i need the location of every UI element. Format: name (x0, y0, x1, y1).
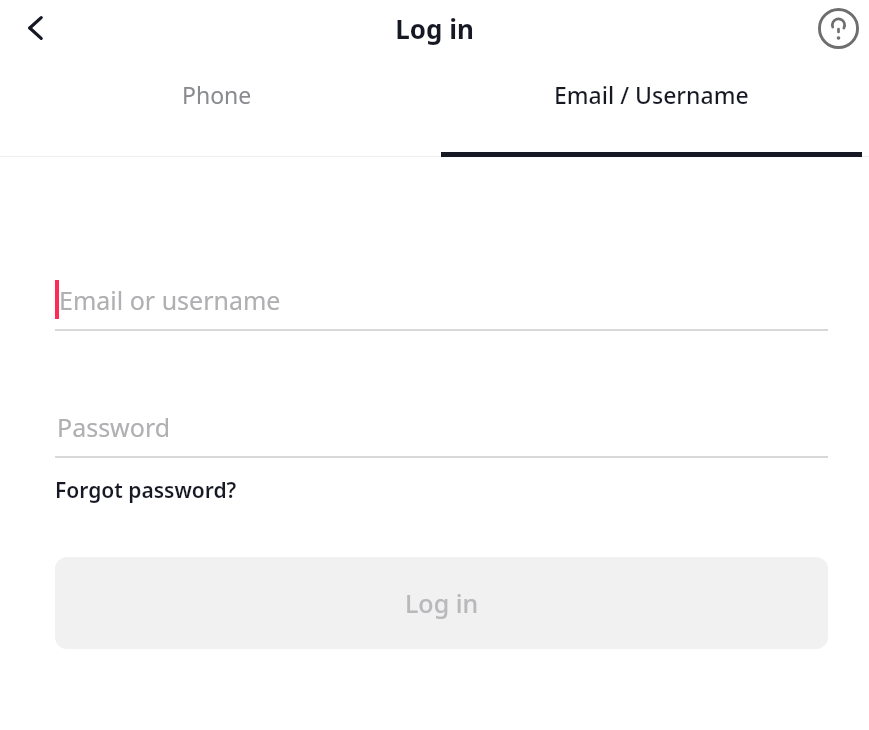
staticText: Log in (405, 586, 479, 620)
button[interactable]: Password (55, 395, 828, 458)
button[interactable]: Email or username (55, 268, 828, 331)
button[interactable]: Phone (0, 56, 434, 157)
button[interactable]: Forgot password? (55, 476, 237, 505)
staticText: Forgot password? (55, 476, 237, 505)
staticText: Email / Username (554, 79, 749, 110)
button[interactable]: Log in (55, 557, 828, 649)
staticText: Phone (182, 79, 252, 110)
staticText: Password (57, 410, 171, 444)
button[interactable]: Back (8, 0, 64, 56)
button[interactable]: Help (810, 0, 866, 56)
staticText: Log in (395, 11, 474, 46)
button[interactable]: Email / Username (434, 56, 869, 157)
staticText: Email or username (59, 283, 281, 317)
